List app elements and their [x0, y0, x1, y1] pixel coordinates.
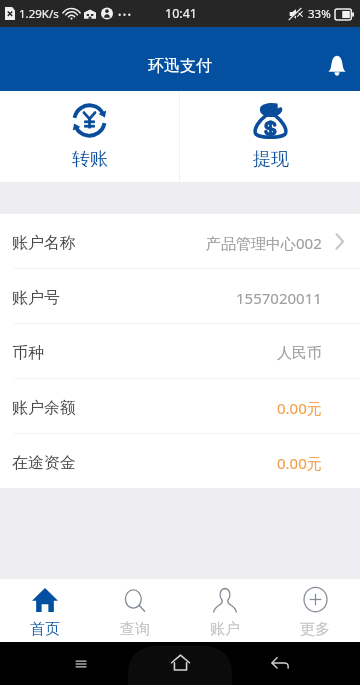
button[interactable]: 账户号 [0, 269, 360, 323]
staticText: 账户余额 [12, 398, 76, 418]
staticText: 提现 [253, 148, 289, 171]
staticText: 账户名称 [12, 233, 76, 253]
staticText: 账户 [210, 620, 240, 639]
button[interactable]: 提现 [180, 91, 360, 182]
staticText: 币种 [12, 343, 44, 363]
button[interactable]: 更多 [270, 579, 360, 642]
staticText: 0.00元 [277, 398, 322, 418]
staticText: 查询 [120, 620, 150, 639]
button[interactable]: Home [160, 642, 200, 685]
button[interactable]: Back [260, 642, 300, 685]
button[interactable]: 账户 [180, 579, 270, 642]
staticText: 产品管理中心002 [206, 233, 322, 253]
staticText: 账户号 [12, 288, 60, 308]
button[interactable]: 账户余额 [0, 379, 360, 433]
button[interactable]: 转账 [0, 91, 179, 182]
staticText: 0.00元 [277, 453, 322, 473]
button[interactable]: 币种 [0, 324, 360, 378]
button[interactable]: 查询 [90, 579, 180, 642]
staticText: 更多 [300, 620, 330, 639]
staticText: 环迅支付 [148, 56, 212, 76]
staticText: 1557020011 [236, 288, 322, 308]
staticText: 33% [308, 6, 331, 22]
staticText: 首页 [30, 620, 60, 639]
button[interactable]: Menu [61, 642, 101, 685]
button[interactable]: 环迅支付 [0, 27, 360, 91]
staticText: 人民币 [277, 344, 322, 363]
button[interactable]: Notifications [316, 44, 358, 86]
staticText: 转账 [72, 148, 108, 171]
button[interactable]: 在途资金 [0, 434, 360, 488]
button[interactable]: 账户名称 [0, 214, 360, 268]
staticText: 在途资金 [12, 453, 76, 473]
staticText: 10:41 [165, 5, 197, 22]
button[interactable]: 首页 [0, 579, 90, 642]
staticText: 1.29K/s [19, 6, 59, 22]
